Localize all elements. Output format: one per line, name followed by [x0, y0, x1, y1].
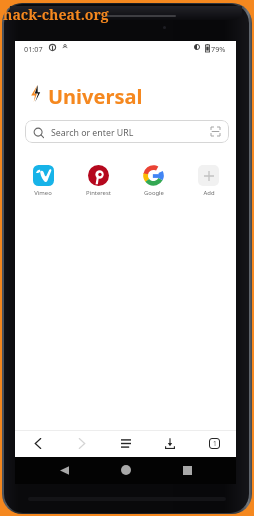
- other: Scan QR code: [211, 127, 220, 136]
- button[interactable]: Menu: [104, 431, 148, 456]
- staticText: Google: [144, 189, 164, 197]
- button[interactable]: Back: [15, 431, 60, 456]
- other: Home: [121, 465, 131, 475]
- button[interactable]: Vimeo: [15, 165, 71, 197]
- staticText: 79%: [211, 44, 226, 54]
- staticText: Add: [203, 189, 215, 197]
- staticText: Pinterest: [86, 189, 111, 197]
- staticText: Search or enter URL: [51, 127, 134, 139]
- staticText: hack-cheat.org: [3, 5, 109, 24]
- other: Back: [60, 466, 69, 475]
- button[interactable]: Add: [181, 165, 236, 197]
- staticText: Vimeo: [34, 189, 52, 197]
- staticText: 01:07: [24, 44, 43, 54]
- button[interactable]: Downloads: [148, 431, 192, 456]
- button[interactable]: Tabs: [192, 431, 236, 456]
- button[interactable]: Pinterest: [71, 165, 126, 197]
- staticText: 1: [213, 439, 217, 448]
- button[interactable]: Google: [126, 165, 181, 197]
- button[interactable]: Search or enter URL: [25, 120, 229, 143]
- staticText: Universal: [48, 83, 143, 110]
- button[interactable]: Forward: [60, 431, 104, 456]
